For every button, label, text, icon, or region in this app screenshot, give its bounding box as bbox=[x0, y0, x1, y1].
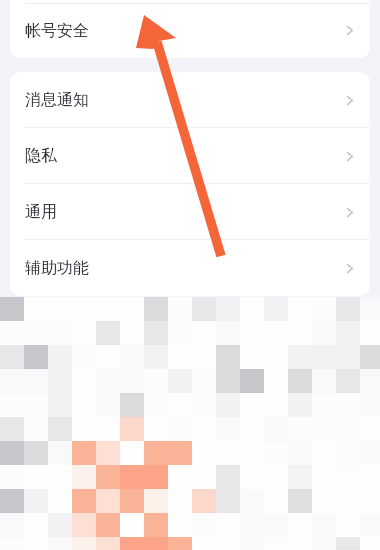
button[interactable]: 隐私 bbox=[10, 128, 370, 184]
button[interactable]: 消息通知 bbox=[10, 72, 370, 128]
staticText: 隐私 bbox=[25, 146, 57, 166]
staticText: 消息通知 bbox=[25, 90, 89, 110]
button[interactable]: 帐号安全 bbox=[10, 3, 370, 58]
button[interactable]: 通用 bbox=[10, 184, 370, 240]
staticText: 辅助功能 bbox=[25, 258, 89, 278]
other: Settings list bbox=[0, 0, 380, 550]
staticText: 帐号安全 bbox=[25, 21, 89, 41]
staticText: 通用 bbox=[25, 202, 57, 222]
button[interactable]: 辅助功能 bbox=[10, 240, 370, 296]
